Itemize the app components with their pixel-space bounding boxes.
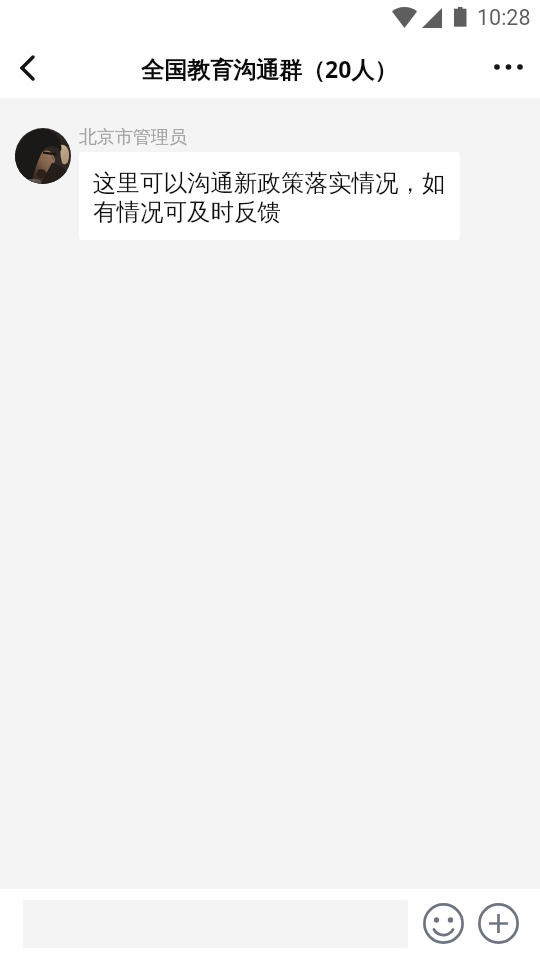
button[interactable]: 这里可以沟通新政策落实情况，如有情况可及时反馈 — [79, 152, 460, 240]
button[interactable]: Emoji — [421, 901, 465, 945]
staticText: 全国教育沟通群（20人） — [141, 53, 398, 84]
staticText: 这里可以沟通新政策落实情况，如有情况可及时反馈 — [93, 168, 453, 227]
button[interactable]: More options — [486, 38, 540, 98]
button[interactable]: Back — [0, 38, 54, 98]
button[interactable]: Contact avatar — [15, 128, 71, 184]
button[interactable]: Add attachment — [476, 901, 520, 945]
staticText: 北京市管理员 — [79, 126, 187, 149]
staticText: 10:28 — [477, 5, 531, 30]
